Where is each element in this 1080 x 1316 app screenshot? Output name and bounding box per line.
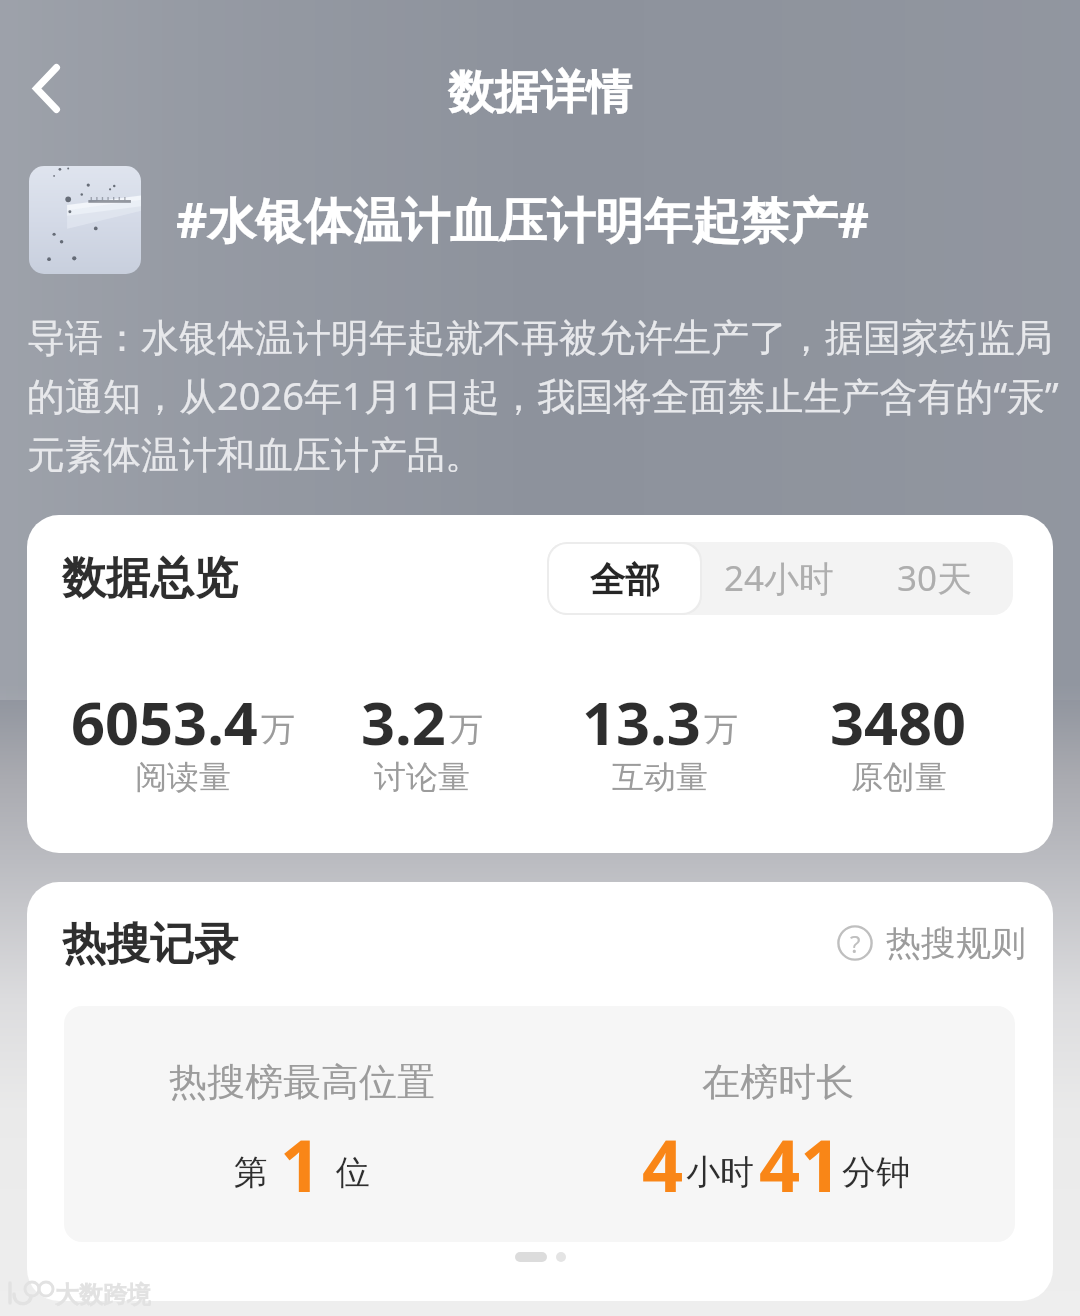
staticText: 热搜规则 bbox=[886, 921, 1026, 965]
staticText: 万 bbox=[704, 708, 738, 751]
staticText: 原创量 bbox=[851, 757, 947, 797]
staticText: 互动量 bbox=[612, 757, 708, 797]
staticText: 大数跨境 bbox=[55, 1280, 151, 1308]
staticText: 万 bbox=[449, 708, 483, 751]
staticText: 小时 bbox=[686, 1151, 754, 1194]
staticText: 数据总览 bbox=[62, 551, 238, 606]
staticText: #水银体温计血压计明年起禁产# bbox=[176, 186, 870, 252]
staticText: 13.3 bbox=[582, 681, 701, 762]
staticText: 万 bbox=[261, 708, 295, 751]
staticText: 6053.4 bbox=[71, 681, 258, 762]
staticText: 位 bbox=[336, 1151, 370, 1194]
staticText: 4 bbox=[642, 1115, 684, 1213]
staticText: 数据详情 bbox=[448, 64, 632, 122]
button[interactable]: 30天 bbox=[857, 542, 1012, 615]
button[interactable]: ? bbox=[837, 915, 1026, 971]
button[interactable]: 24小时 bbox=[702, 542, 857, 615]
staticText: 讨论量 bbox=[374, 757, 470, 797]
staticText: 30天 bbox=[897, 554, 973, 602]
staticText: 41 bbox=[759, 1115, 842, 1213]
staticText: 导语：水银体温计明年起就不再被允许生产了，据国家药监局 的通知，从2026年1月… bbox=[27, 314, 1059, 479]
staticText: 分钟 bbox=[842, 1151, 910, 1194]
staticText: 在榜时长 bbox=[702, 1058, 854, 1106]
button[interactable]: #水银体温计血压计明年起禁产# bbox=[176, 180, 870, 258]
button[interactable]: 全部 bbox=[547, 542, 702, 615]
staticText: 全部 bbox=[590, 558, 660, 602]
staticText: 3480 bbox=[830, 681, 967, 762]
button[interactable]: Topic image bbox=[29, 166, 141, 274]
staticText: 1 bbox=[280, 1115, 322, 1213]
staticText: 3.2 bbox=[361, 681, 446, 762]
staticText: ? bbox=[850, 927, 861, 960]
staticText: 热搜榜最高位置 bbox=[169, 1058, 435, 1106]
staticText: 阅读量 bbox=[135, 757, 231, 797]
staticText: 第 bbox=[234, 1151, 268, 1194]
button[interactable]: Back bbox=[0, 41, 96, 137]
staticText: 24小时 bbox=[724, 554, 835, 602]
staticText: 热搜记录 bbox=[62, 917, 238, 972]
